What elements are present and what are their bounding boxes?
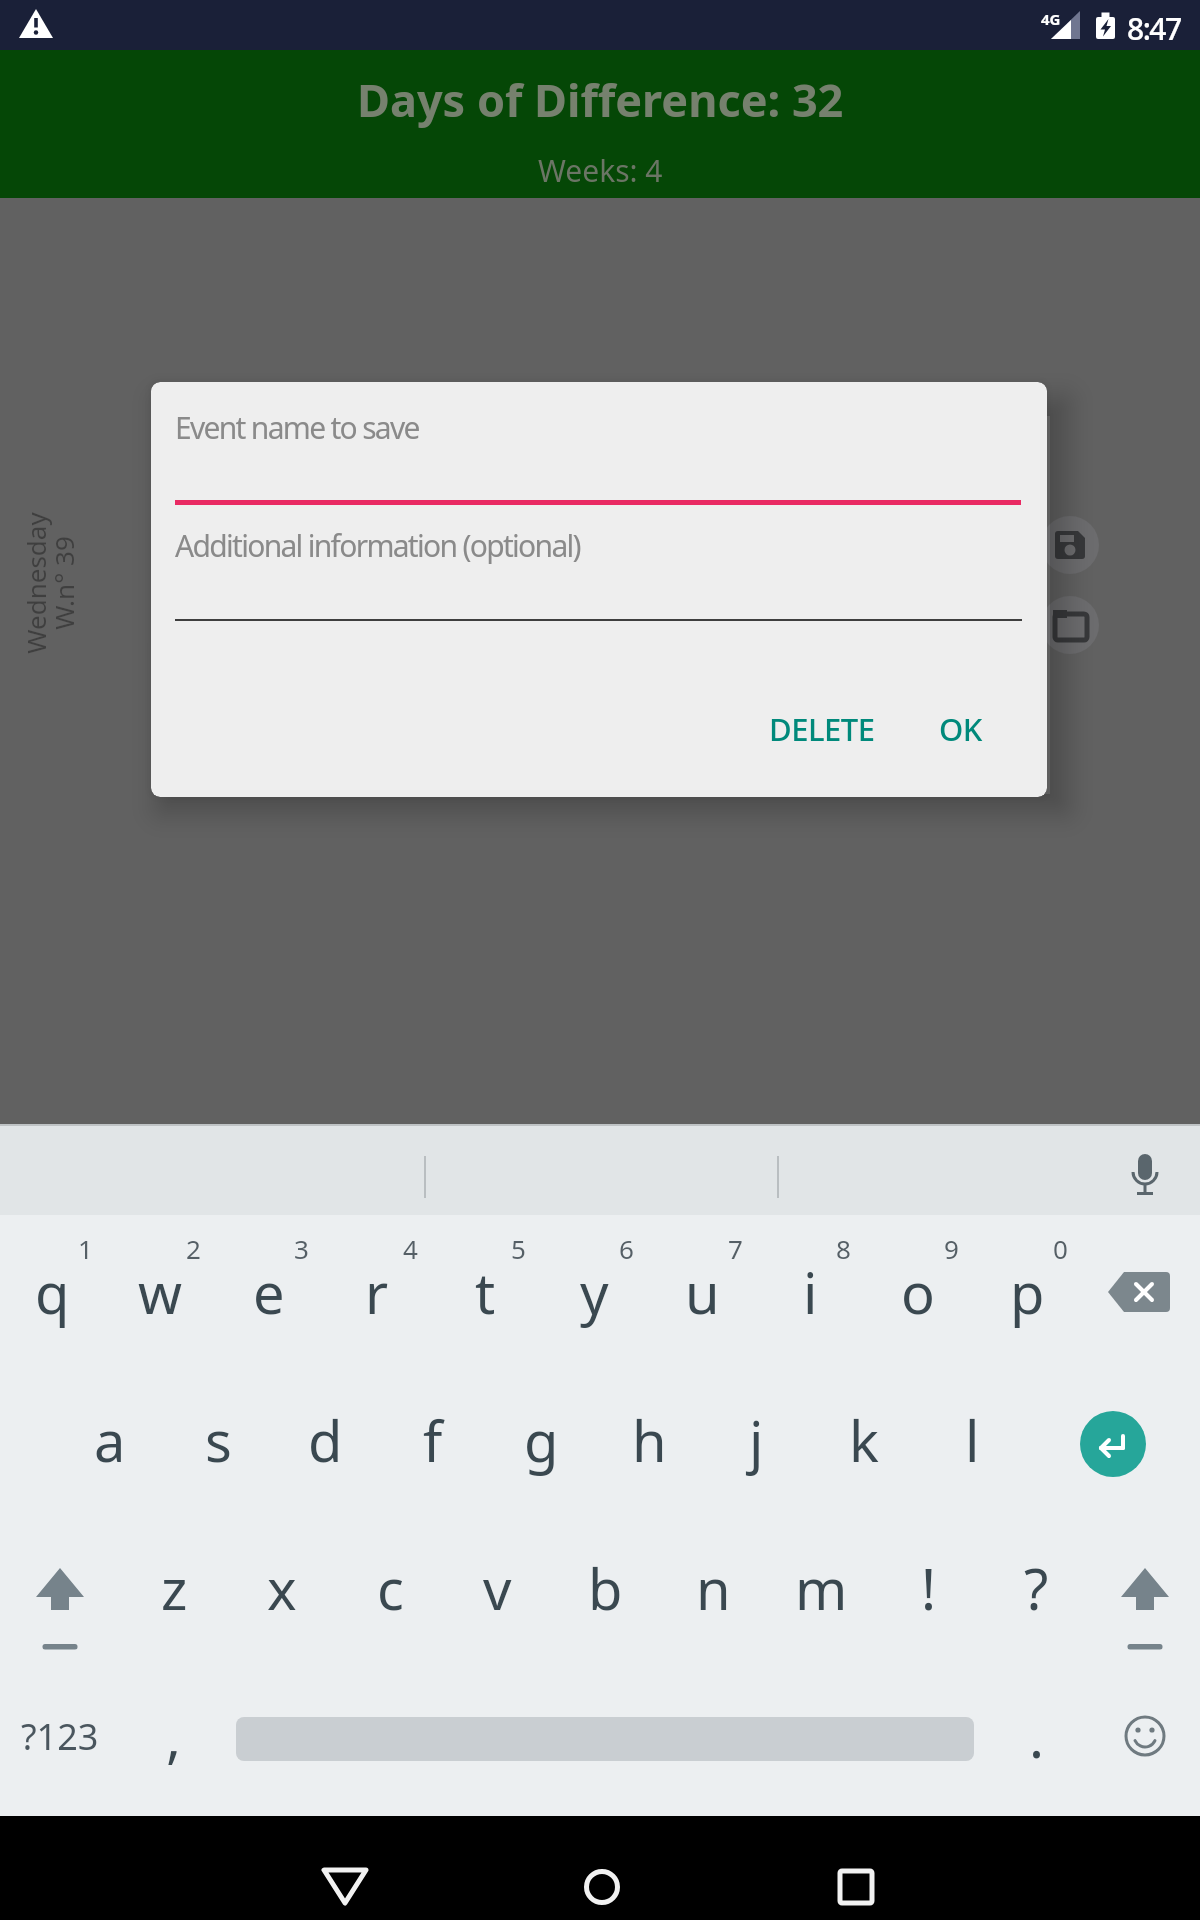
staticText: i bbox=[803, 1254, 818, 1330]
button[interactable] bbox=[1091, 1518, 1199, 1658]
staticText: ?123 bbox=[21, 1712, 99, 1761]
staticText: x bbox=[267, 1550, 297, 1626]
staticText: 8:47 bbox=[1127, 8, 1181, 49]
button[interactable]: ! bbox=[875, 1518, 983, 1658]
staticText: e bbox=[253, 1254, 285, 1330]
staticText: OK bbox=[939, 708, 982, 750]
staticText: 8 bbox=[836, 1231, 851, 1266]
staticText: v bbox=[483, 1550, 512, 1626]
button[interactable] bbox=[1091, 1666, 1199, 1806]
staticText: p bbox=[1010, 1254, 1045, 1330]
button[interactable]: j bbox=[702, 1370, 810, 1510]
staticText: ? bbox=[1024, 1550, 1049, 1626]
staticText: w bbox=[138, 1254, 183, 1330]
button[interactable]: u bbox=[648, 1222, 756, 1362]
staticText: 4G bbox=[1041, 9, 1061, 29]
button[interactable]: p bbox=[973, 1222, 1081, 1362]
button[interactable] bbox=[295, 1837, 395, 1920]
button[interactable]: w bbox=[106, 1222, 214, 1362]
button[interactable] bbox=[1080, 1411, 1146, 1477]
button[interactable]: n bbox=[659, 1518, 767, 1658]
button[interactable]: g bbox=[487, 1370, 595, 1510]
button[interactable]: i bbox=[756, 1222, 864, 1362]
staticText: d bbox=[308, 1402, 343, 1478]
button[interactable]: k bbox=[810, 1370, 918, 1510]
button[interactable]: DELETE bbox=[745, 697, 899, 761]
button[interactable]: y bbox=[540, 1222, 648, 1362]
button[interactable]: d bbox=[271, 1370, 379, 1510]
staticText: m bbox=[795, 1550, 848, 1626]
button[interactable]: f bbox=[379, 1370, 487, 1510]
button[interactable]: OK bbox=[883, 697, 1037, 761]
staticText: z bbox=[161, 1550, 188, 1626]
staticText: 6 bbox=[619, 1231, 634, 1266]
staticText: 3 bbox=[294, 1231, 309, 1266]
staticText: 2 bbox=[186, 1231, 201, 1266]
staticText: 7 bbox=[728, 1231, 743, 1266]
staticText: k bbox=[849, 1402, 879, 1478]
button[interactable]: m bbox=[767, 1518, 875, 1658]
staticText: o bbox=[901, 1254, 935, 1330]
button[interactable]: t bbox=[431, 1222, 539, 1362]
staticText: Additional information (optional) bbox=[175, 525, 580, 566]
staticText: Event name to save bbox=[175, 407, 419, 448]
staticText: ! bbox=[921, 1550, 937, 1626]
button[interactable]: s bbox=[164, 1370, 272, 1510]
staticText: s bbox=[205, 1402, 232, 1478]
button[interactable]: v bbox=[443, 1518, 551, 1658]
button[interactable]: q bbox=[0, 1222, 106, 1362]
staticText: 1 bbox=[78, 1231, 93, 1266]
staticText: n bbox=[696, 1550, 731, 1626]
staticText: l bbox=[965, 1402, 980, 1478]
button[interactable] bbox=[6, 1518, 114, 1658]
button[interactable] bbox=[1086, 1222, 1194, 1362]
button[interactable]: r bbox=[323, 1222, 431, 1362]
button[interactable]: x bbox=[228, 1518, 336, 1658]
staticText: j bbox=[749, 1402, 764, 1478]
button[interactable]: c bbox=[336, 1518, 444, 1658]
staticText: h bbox=[632, 1402, 667, 1478]
button[interactable]: ? bbox=[982, 1518, 1090, 1658]
button[interactable]: b bbox=[551, 1518, 659, 1658]
staticText: . bbox=[1029, 1698, 1045, 1774]
staticText: f bbox=[423, 1402, 443, 1478]
button[interactable] bbox=[1041, 596, 1099, 654]
button[interactable] bbox=[806, 1837, 906, 1920]
staticText: r bbox=[365, 1254, 389, 1330]
staticText: Days of Difference: 32 bbox=[357, 69, 844, 130]
button[interactable]: o bbox=[864, 1222, 972, 1362]
staticText: u bbox=[685, 1254, 720, 1330]
staticText: q bbox=[35, 1254, 70, 1330]
button[interactable]: h bbox=[595, 1370, 703, 1510]
staticText: Wednesday W.n° 39 bbox=[18, 512, 82, 654]
button[interactable] bbox=[552, 1837, 652, 1920]
button[interactable]: l bbox=[918, 1370, 1026, 1510]
button[interactable]: , bbox=[120, 1666, 228, 1806]
staticText: c bbox=[377, 1550, 404, 1626]
staticText: b bbox=[588, 1550, 623, 1626]
staticText: 4 bbox=[403, 1231, 418, 1266]
staticText: g bbox=[524, 1402, 559, 1478]
staticText: y bbox=[580, 1254, 609, 1330]
staticText: 0 bbox=[1053, 1231, 1068, 1266]
staticText: Weeks: 4 bbox=[538, 150, 663, 191]
staticText: 5 bbox=[511, 1231, 526, 1266]
staticText: DELETE bbox=[769, 708, 875, 750]
button[interactable]: ?123 bbox=[6, 1666, 114, 1806]
button[interactable]: a bbox=[56, 1370, 164, 1510]
staticText: , bbox=[166, 1698, 182, 1774]
button[interactable]: e bbox=[215, 1222, 323, 1362]
staticText: t bbox=[475, 1254, 496, 1330]
staticText: 9 bbox=[944, 1231, 959, 1266]
staticText: a bbox=[94, 1402, 126, 1478]
button[interactable] bbox=[1041, 516, 1099, 574]
button[interactable]: z bbox=[120, 1518, 228, 1658]
button[interactable]: . bbox=[983, 1666, 1091, 1806]
